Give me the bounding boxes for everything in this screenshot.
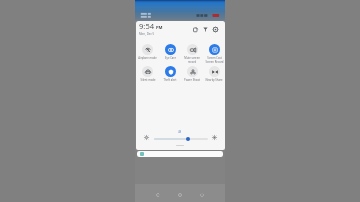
staticText: Theft alert <box>163 78 177 82</box>
button[interactable]: Cast <box>201 25 210 34</box>
button[interactable]: Power Shoot <box>181 65 203 87</box>
staticText: 9:54 <box>139 21 155 31</box>
staticText: Screen Cast Screen Record <box>205 56 224 63</box>
staticText: Silent mode <box>140 78 156 82</box>
button[interactable]: Back <box>152 189 164 201</box>
staticText: Mute screen record <box>184 56 200 63</box>
staticText: Airplane mode <box>138 56 157 60</box>
button[interactable] <box>137 151 223 157</box>
staticText: Power Shoot <box>184 78 200 82</box>
button[interactable]: Eye Care <box>159 43 181 65</box>
staticText: 48 <box>178 130 182 134</box>
button[interactable]: Screen Cast Screen Record <box>203 43 225 65</box>
button[interactable]: Home <box>174 189 186 201</box>
button[interactable]: Theft alert <box>159 65 181 87</box>
button[interactable]: Settings <box>211 25 220 34</box>
button[interactable]: Mute screen record <box>181 43 203 65</box>
button[interactable]: Edit tiles <box>191 25 200 34</box>
staticText: Eye Care <box>165 56 176 60</box>
staticText: Mon, Dec 5 <box>139 32 155 36</box>
button[interactable]: Airplane mode <box>136 43 159 65</box>
staticText: Nearby Share <box>205 78 223 82</box>
button[interactable]: Nearby Share <box>203 65 225 87</box>
button[interactable]: Silent mode <box>136 65 159 87</box>
button[interactable]: Lower brightness <box>144 135 149 140</box>
staticText: PM <box>156 25 163 31</box>
button[interactable]: Raise brightness <box>212 135 217 140</box>
button[interactable]: Recents <box>196 189 208 201</box>
